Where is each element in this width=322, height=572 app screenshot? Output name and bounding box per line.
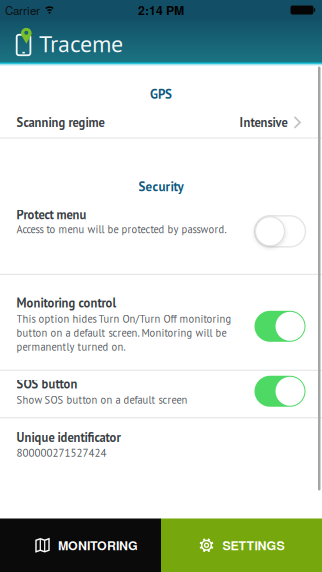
staticText: This option hides Turn On/Turn Off monit… [16,312,231,354]
staticText: Access to menu will be protected by pass… [16,223,226,236]
button[interactable]: On [254,311,305,342]
staticText: Intensive [239,114,287,130]
staticText: 800000271527424 [16,445,106,460]
staticText: SOS button [16,376,77,392]
staticText: 2:14 PM [138,1,184,19]
button[interactable]: MONITORING [0,518,161,572]
button[interactable]: Scanning regime [0,102,322,130]
staticText: Traceme [39,28,123,59]
staticText: Monitoring control [16,295,116,311]
staticText: Scanning regime [16,114,104,130]
staticText: GPS [150,85,172,102]
button[interactable]: SETTINGS [161,518,322,572]
staticText: Security [138,178,183,195]
staticText: MONITORING [58,536,138,554]
staticText: Carrier [5,2,40,18]
button[interactable]: Off [254,216,305,247]
staticText: Protect menu [16,206,86,223]
staticText: Unique identificator [16,429,120,445]
staticText: SETTINGS [222,536,284,554]
button[interactable]: On [254,376,305,407]
staticText: Show SOS button on a default screen [16,393,187,407]
